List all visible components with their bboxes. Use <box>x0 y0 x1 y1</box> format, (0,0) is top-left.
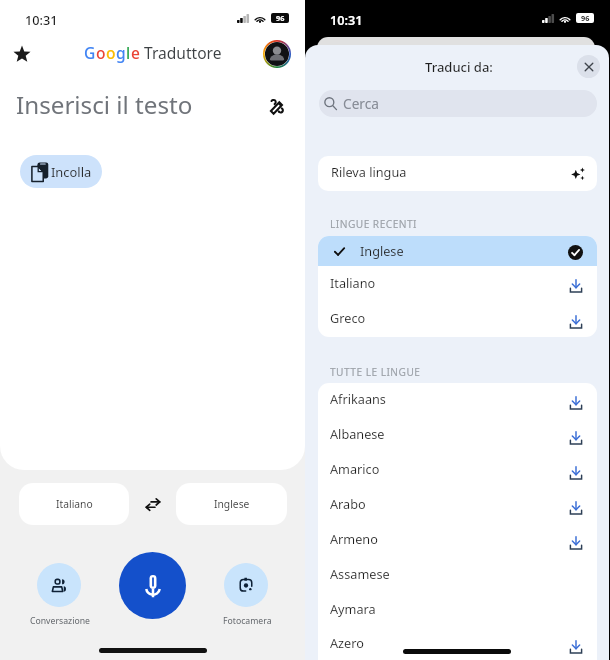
staticText: 10:31 <box>330 11 363 28</box>
button[interactable]: Aymara <box>318 593 597 628</box>
button[interactable]: Scambia lingue <box>135 487 170 522</box>
button[interactable]: Italiano <box>318 266 597 302</box>
staticText: Armeno <box>330 530 378 547</box>
staticText: Incolla <box>51 163 92 181</box>
staticText: Azero <box>330 634 364 651</box>
button[interactable]: Rileva lingua <box>318 156 597 191</box>
staticText: TUTTE LE LINGUE <box>330 365 421 379</box>
staticText: Amarico <box>330 460 380 477</box>
button[interactable]: Account <box>260 37 294 71</box>
staticText: Traduttore <box>140 42 222 63</box>
staticText: Cerca <box>343 94 379 113</box>
button[interactable]: Inglese <box>318 236 597 266</box>
button[interactable]: Armeno <box>318 523 597 558</box>
button[interactable]: Incolla <box>20 155 102 188</box>
button[interactable]: Preferiti <box>8 40 36 68</box>
button[interactable]: Arabo <box>318 488 597 523</box>
button[interactable]: Chiudi <box>577 55 600 78</box>
button[interactable]: Conversazione <box>37 563 81 607</box>
staticText: o <box>106 42 116 63</box>
staticText: Arabo <box>330 495 366 512</box>
button[interactable]: Afrikaans <box>318 383 597 418</box>
staticText: Traduci da: <box>425 58 493 76</box>
staticText: Greco <box>330 309 366 326</box>
staticText: Inglese <box>360 242 404 259</box>
staticText: Albanese <box>330 425 385 442</box>
button[interactable]: Greco <box>318 302 597 337</box>
button[interactable]: Fotocamera <box>224 563 268 607</box>
staticText: Fotocamera <box>223 615 272 627</box>
staticText: 96 <box>276 13 285 23</box>
staticText: Inglese <box>214 497 250 511</box>
staticText: Rileva lingua <box>331 163 407 180</box>
staticText: Italiano <box>56 497 93 511</box>
button[interactable]: Amarico <box>318 453 597 488</box>
staticText: o <box>96 42 106 63</box>
staticText: g <box>116 42 126 63</box>
staticText: G <box>84 42 96 63</box>
button[interactable]: Azero <box>318 628 597 660</box>
staticText: Conversazione <box>30 615 90 627</box>
button[interactable]: Assamese <box>318 558 597 593</box>
button[interactable]: Italiano <box>19 483 129 525</box>
staticText: 10:31 <box>25 11 58 28</box>
staticText: Inserisci il testo <box>16 88 193 121</box>
staticText: 96 <box>581 13 590 23</box>
button[interactable]: Inglese <box>176 483 287 525</box>
staticText: Aymara <box>330 600 376 617</box>
button[interactable]: Albanese <box>318 418 597 453</box>
staticText: Italiano <box>330 274 376 291</box>
staticText: Afrikaans <box>330 390 386 407</box>
button[interactable]: Microfono <box>119 552 186 619</box>
staticText: e <box>131 42 140 63</box>
staticText: Assamese <box>330 565 390 582</box>
button[interactable]: Cerca <box>319 90 597 117</box>
button[interactable]: Scrittura a mano <box>262 91 292 121</box>
staticText: l <box>126 42 131 63</box>
staticText: LINGUE RECENTI <box>330 217 417 231</box>
